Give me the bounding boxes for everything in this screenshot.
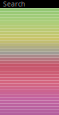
staticText: Search: [3, 0, 25, 8]
